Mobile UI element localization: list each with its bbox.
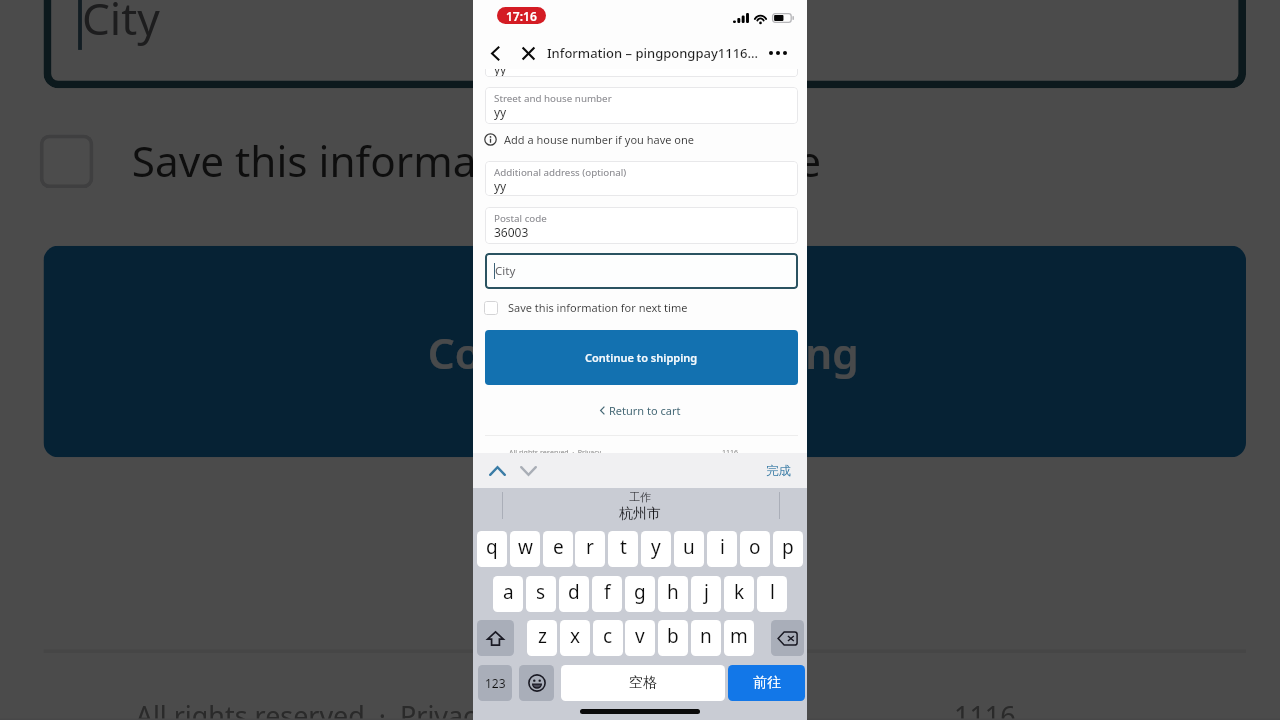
button[interactable]: p	[773, 531, 803, 567]
button[interactable]: City	[485, 253, 798, 289]
staticText: y	[651, 534, 661, 560]
staticText: j	[704, 579, 709, 605]
staticText: i	[720, 534, 725, 560]
button[interactable]: z	[527, 620, 557, 656]
button[interactable]: Postal code	[485, 207, 798, 244]
staticText: x	[570, 623, 581, 649]
staticText: z	[538, 623, 547, 649]
staticText: Information – pingpongpay1116…	[547, 44, 759, 62]
staticText: Continue to shipping	[428, 323, 862, 380]
staticText: 完成	[766, 463, 791, 479]
staticText: h	[667, 579, 679, 605]
staticText: Postal code	[494, 212, 547, 225]
button[interactable]: Back	[482, 40, 508, 66]
staticText: f	[604, 579, 611, 605]
staticText: g	[634, 579, 646, 605]
staticText: 36003	[494, 224, 529, 240]
button[interactable]: a	[493, 576, 523, 612]
staticText: a	[503, 579, 514, 605]
staticText: u	[683, 534, 695, 560]
button[interactable]: Save this information for next time	[484, 300, 688, 315]
staticText: 1116	[954, 699, 1019, 720]
staticText: k	[734, 579, 745, 605]
staticText: 1116	[722, 448, 739, 458]
staticText: m	[730, 623, 748, 649]
staticText: Add a house number if you have one	[504, 132, 694, 147]
button[interactable]: y	[641, 531, 671, 567]
button[interactable]: j	[691, 576, 721, 612]
button[interactable]: i	[707, 531, 737, 567]
button[interactable]: Return to cart	[455, 511, 827, 599]
button[interactable]: 完成	[761, 458, 795, 483]
button[interactable]: Continue to shipping	[485, 330, 798, 385]
staticText: 前往	[753, 674, 781, 692]
staticText: yy	[494, 104, 507, 120]
staticText: Return to cart	[520, 526, 796, 584]
staticText: Continue to shipping	[585, 350, 698, 365]
button[interactable]: d	[559, 576, 589, 612]
staticText: p	[782, 534, 794, 560]
staticText: e	[553, 534, 564, 560]
button[interactable]: k	[724, 576, 754, 612]
staticText: 17:16	[506, 8, 537, 24]
button[interactable]: v	[625, 620, 655, 656]
staticText: c	[603, 623, 613, 649]
button[interactable]: m	[724, 620, 754, 656]
button[interactable]: u	[674, 531, 704, 567]
button[interactable]: b	[658, 620, 688, 656]
button[interactable]: Save this information for next time	[40, 131, 823, 188]
button[interactable]: n	[691, 620, 721, 656]
button[interactable]: 空格	[561, 665, 725, 701]
button[interactable]: Close	[516, 41, 540, 65]
button[interactable]: Emoji keyboard	[519, 665, 554, 701]
button[interactable]: Additional address (optional)	[485, 161, 798, 196]
staticText: q	[486, 534, 498, 560]
button[interactable]: f	[592, 576, 622, 612]
button[interactable]: Return to cart	[592, 399, 689, 422]
button[interactable]: t	[608, 531, 638, 567]
staticText: o	[749, 534, 761, 560]
button[interactable]: w	[510, 531, 540, 567]
staticText: City	[82, 0, 163, 50]
button[interactable]: City	[43, 0, 1246, 88]
button[interactable]: g	[625, 576, 655, 612]
staticText: Save this information for next time	[132, 131, 823, 188]
staticText: d	[568, 579, 580, 605]
staticText: 123	[485, 675, 506, 691]
button[interactable]: x	[560, 620, 590, 656]
button[interactable]: 前往	[728, 665, 805, 701]
button[interactable]: More options	[765, 41, 791, 65]
staticText: v	[635, 623, 645, 649]
button[interactable]: Previous field	[485, 458, 510, 483]
button[interactable]: e	[543, 531, 573, 567]
staticText: All rights reserved · Privacy	[509, 448, 602, 458]
button[interactable]: o	[740, 531, 770, 567]
staticText: All rights reserved · Privacy	[136, 699, 493, 720]
staticText: 空格	[629, 674, 657, 692]
staticText: 工作	[629, 490, 651, 504]
button[interactable]: Delete	[771, 620, 804, 656]
staticText: yy	[494, 178, 507, 194]
button[interactable]: Next field	[516, 458, 541, 483]
staticText: t	[620, 534, 627, 560]
button[interactable]: Continue to shipping	[43, 246, 1246, 457]
staticText: Save this information for next time	[508, 300, 688, 315]
staticText: City	[495, 263, 516, 279]
staticText: s	[536, 579, 546, 605]
button[interactable]: l	[757, 576, 787, 612]
button[interactable]: q	[477, 531, 507, 567]
button[interactable]: s	[526, 576, 556, 612]
staticText: b	[667, 623, 679, 649]
staticText: n	[700, 623, 712, 649]
staticText: Additional address (optional)	[494, 166, 627, 179]
button[interactable]: Shift	[477, 620, 514, 656]
button[interactable]: 123	[478, 665, 512, 701]
button[interactable]: c	[593, 620, 623, 656]
staticText: 杭州市	[619, 505, 661, 523]
staticText: w	[518, 534, 533, 560]
button[interactable]: h	[658, 576, 688, 612]
button[interactable]: r	[575, 531, 605, 567]
staticText: Street and house number	[494, 92, 612, 105]
button[interactable]: Street and house number	[485, 87, 798, 124]
staticText: Return to cart	[609, 403, 681, 418]
